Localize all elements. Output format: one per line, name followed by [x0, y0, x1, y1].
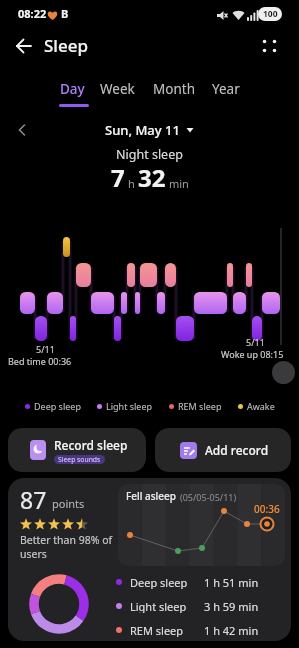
staticText: 00:36: [254, 502, 280, 516]
staticText: Sleep sounds: [58, 455, 101, 464]
staticText: 32: [138, 161, 166, 193]
staticText: h: [128, 176, 135, 191]
staticText: Deep sleep: [130, 575, 188, 589]
staticText: 87: [20, 484, 47, 515]
staticText: Bed time 00:36: [8, 355, 72, 367]
staticText: points: [52, 496, 85, 511]
button[interactable]: Record sleep: [8, 428, 146, 472]
staticText: Night sleep: [116, 146, 183, 163]
staticText: Awake: [247, 400, 275, 412]
staticText: 1 h 42 min: [204, 623, 259, 637]
staticText: Fell asleep: [126, 489, 176, 503]
staticText: 3 h 59 min: [204, 599, 259, 613]
button[interactable]: Week: [100, 80, 135, 98]
staticText: 100: [263, 8, 278, 20]
staticText: Month: [153, 80, 195, 98]
button[interactable]: Sun, May 11: [0, 118, 299, 142]
staticText: Day: [60, 80, 85, 98]
button[interactable]: Fell asleep: [118, 484, 285, 566]
button[interactable]: [260, 37, 278, 55]
staticText: Light sleep: [130, 599, 187, 613]
staticText: 7: [111, 161, 125, 193]
button[interactable]: Year: [212, 80, 240, 98]
staticText: Light sleep: [106, 400, 153, 412]
staticText: (05/05-05/11): [180, 491, 237, 503]
staticText: Year: [212, 80, 240, 98]
staticText: min: [169, 176, 189, 191]
staticText: Add record: [205, 442, 269, 458]
button[interactable]: Day: [60, 80, 85, 98]
staticText: Sun, May 11: [105, 121, 180, 139]
staticText: Deep sleep: [34, 400, 81, 412]
staticText: 5/11: [246, 336, 265, 348]
staticText: 1 h 51 min: [204, 575, 259, 589]
staticText: Record sleep: [54, 437, 128, 453]
staticText: REM sleep: [130, 623, 184, 637]
staticText: B: [61, 6, 69, 21]
staticText: Better than 98% of: [20, 533, 113, 547]
button[interactable]: Add record: [155, 428, 291, 472]
button[interactable]: [16, 38, 32, 54]
staticText: users: [20, 547, 47, 561]
staticText: REM sleep: [178, 400, 222, 412]
staticText: 5/11: [36, 343, 55, 355]
staticText: Sleep: [44, 34, 88, 57]
button[interactable]: [272, 361, 295, 384]
button[interactable]: [18, 124, 26, 136]
staticText: Woke up 08:15: [221, 348, 284, 360]
staticText: 08:22: [18, 6, 47, 21]
button[interactable]: Month: [153, 80, 195, 98]
staticText: Week: [100, 80, 135, 98]
